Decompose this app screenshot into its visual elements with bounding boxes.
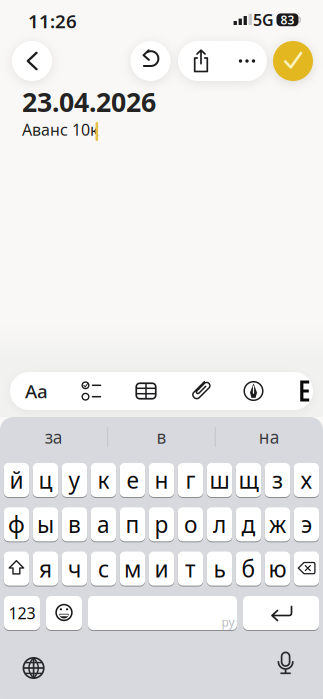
staticText: 23.04.2026 bbox=[22, 84, 156, 119]
staticText: у bbox=[68, 465, 80, 495]
button[interactable]: Shift bbox=[4, 551, 29, 586]
button[interactable]: Next keyboard bbox=[14, 648, 54, 688]
staticText: г bbox=[185, 465, 195, 495]
button[interactable]: в bbox=[108, 418, 214, 456]
button[interactable]: Undo bbox=[130, 41, 170, 81]
staticText: п bbox=[125, 509, 139, 539]
staticText: Aa bbox=[25, 379, 48, 403]
button[interactable]: Dictate bbox=[266, 646, 306, 686]
button[interactable]: м bbox=[120, 551, 145, 586]
button[interactable]: Markup bbox=[233, 372, 273, 410]
button[interactable]: Space bbox=[88, 595, 237, 630]
staticText: м bbox=[124, 553, 141, 584]
button[interactable]: щ bbox=[236, 462, 261, 497]
staticText: ю bbox=[268, 553, 286, 584]
staticText: ж bbox=[269, 509, 286, 539]
button[interactable]: о bbox=[178, 507, 203, 542]
button[interactable]: ч bbox=[62, 551, 87, 586]
staticText: и bbox=[154, 553, 168, 584]
button[interactable]: ь bbox=[207, 551, 232, 586]
staticText: 11:26 bbox=[28, 9, 77, 33]
staticText: 5G bbox=[253, 9, 274, 30]
button[interactable]: у bbox=[62, 462, 87, 497]
button[interactable]: Table bbox=[126, 372, 166, 410]
button[interactable]: Numbers bbox=[4, 595, 40, 630]
button[interactable]: Attach bbox=[180, 372, 220, 410]
button[interactable]: на bbox=[216, 418, 322, 456]
button[interactable]: за bbox=[1, 418, 107, 456]
staticText: е bbox=[126, 465, 138, 495]
button[interactable]: и bbox=[149, 551, 174, 586]
staticText: в bbox=[68, 509, 81, 539]
button[interactable]: э bbox=[294, 507, 319, 542]
button[interactable]: я bbox=[33, 551, 58, 586]
button[interactable]: с bbox=[91, 551, 116, 586]
button[interactable]: й bbox=[4, 462, 29, 497]
staticText: т bbox=[185, 553, 196, 584]
staticText: за bbox=[45, 425, 63, 448]
button[interactable]: Done bbox=[273, 41, 313, 81]
staticText: л bbox=[213, 509, 226, 539]
button[interactable]: ю bbox=[265, 551, 290, 586]
staticText: 83 bbox=[280, 12, 294, 28]
button[interactable]: п bbox=[120, 507, 145, 542]
button[interactable]: б bbox=[236, 551, 261, 586]
staticText: й bbox=[9, 465, 23, 495]
staticText: на bbox=[259, 425, 280, 448]
button[interactable]: г bbox=[178, 462, 203, 497]
staticText: щ bbox=[238, 465, 258, 495]
button[interactable]: Checklist bbox=[71, 372, 111, 410]
button[interactable]: ц bbox=[33, 462, 58, 497]
button[interactable]: х bbox=[294, 462, 319, 497]
button[interactable]: е bbox=[120, 462, 145, 497]
button[interactable]: Delete bbox=[294, 551, 319, 586]
button[interactable]: р bbox=[149, 507, 174, 542]
staticText: а bbox=[97, 509, 110, 539]
button[interactable]: к bbox=[91, 462, 116, 497]
button[interactable]: Return bbox=[243, 595, 319, 630]
staticText: э bbox=[301, 509, 312, 539]
staticText: х bbox=[300, 465, 312, 495]
staticText: Аванс 10к bbox=[22, 119, 98, 140]
button[interactable]: а bbox=[91, 507, 116, 542]
staticText: ф bbox=[8, 509, 25, 539]
button[interactable]: ш bbox=[207, 462, 232, 497]
staticText: ч bbox=[68, 553, 81, 584]
button[interactable]: л bbox=[207, 507, 232, 542]
button[interactable]: т bbox=[178, 551, 203, 586]
staticText: к bbox=[97, 465, 109, 495]
button[interactable]: ж bbox=[265, 507, 290, 542]
button[interactable]: д bbox=[236, 507, 261, 542]
staticText: о bbox=[184, 509, 197, 539]
button[interactable]: з bbox=[265, 462, 290, 497]
staticText: ь bbox=[213, 553, 225, 584]
button[interactable]: ы bbox=[33, 507, 58, 542]
button[interactable]: в bbox=[62, 507, 87, 542]
staticText: я bbox=[39, 553, 52, 584]
button[interactable]: Share bbox=[179, 41, 223, 81]
staticText: б bbox=[241, 553, 255, 584]
staticText: р bbox=[154, 509, 168, 539]
staticText: с bbox=[98, 553, 109, 584]
staticText: ы bbox=[37, 509, 54, 539]
staticText: н bbox=[154, 465, 168, 495]
button[interactable]: Back bbox=[12, 41, 52, 81]
staticText: ц bbox=[38, 465, 52, 495]
button[interactable]: Emoji bbox=[46, 595, 82, 630]
staticText: в bbox=[156, 425, 166, 448]
button[interactable]: ф bbox=[4, 507, 29, 542]
staticText: ш bbox=[209, 465, 229, 495]
staticText: д bbox=[241, 509, 255, 539]
button[interactable]: Format bbox=[14, 372, 58, 410]
staticText: з bbox=[272, 465, 283, 495]
staticText: 123 bbox=[8, 602, 35, 624]
staticText: ру bbox=[221, 614, 234, 630]
button[interactable]: More bbox=[229, 41, 264, 81]
button[interactable]: н bbox=[149, 462, 174, 497]
